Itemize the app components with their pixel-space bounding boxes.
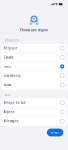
staticText: Suisse [4, 83, 12, 87]
staticText: Tout [4, 93, 10, 97]
button[interactable]: Suisse [1, 80, 66, 89]
staticText: Canada [4, 56, 13, 59]
staticText: Choisir une région [20, 28, 48, 32]
staticText: Afrique du Sud [4, 101, 26, 104]
button[interactable]: Afrique du Sud [1, 98, 66, 107]
staticText: Belgique [4, 46, 18, 50]
staticText: France [4, 65, 12, 68]
staticText: Fréquents [4, 39, 18, 42]
button[interactable]: Belgique [1, 44, 66, 53]
button[interactable]: Allemagne [1, 117, 66, 126]
staticText: Suivant [51, 131, 60, 134]
button[interactable]: Canada [1, 53, 66, 62]
button[interactable]: Suivant [47, 129, 63, 136]
staticText: Allemagne [4, 119, 19, 123]
staticText: Algérie [4, 110, 15, 114]
staticText: Luxembourg [4, 74, 21, 77]
button[interactable]: Algérie [1, 107, 66, 117]
button[interactable]: Luxembourg [1, 71, 66, 80]
button[interactable]: France [1, 62, 66, 71]
